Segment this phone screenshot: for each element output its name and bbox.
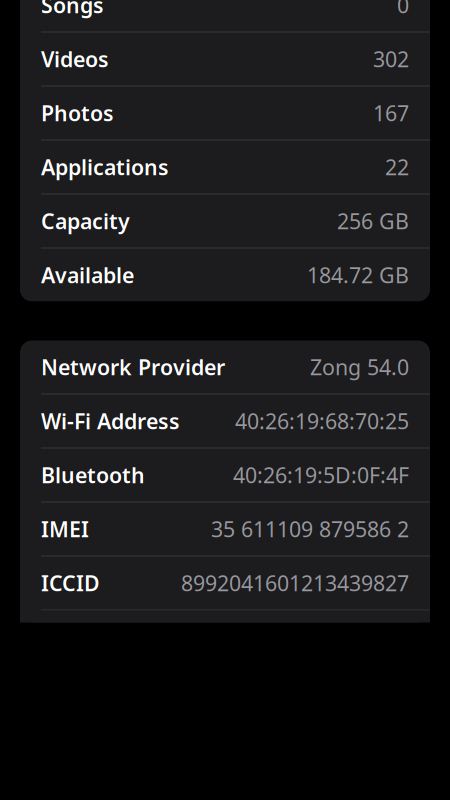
staticText: Bluetooth [41, 461, 145, 489]
staticText: IMEI [41, 515, 89, 543]
staticText: Videos [41, 45, 109, 73]
staticText: 35 611109 879586 2 [211, 515, 409, 543]
staticText: 40:26:19:68:70:25 [235, 407, 409, 435]
staticText: 256 GB [337, 207, 409, 235]
button[interactable]: IMEI [20, 502, 430, 555]
staticText: 167 [373, 99, 409, 127]
staticText: Capacity [41, 207, 130, 235]
staticText: 302 [373, 45, 409, 73]
button[interactable]: Photos [20, 86, 430, 139]
staticText: Zong 54.0 [310, 353, 409, 381]
button[interactable]: Applications [20, 140, 430, 193]
staticText: 8992041601213439827 [181, 569, 409, 597]
button[interactable]: Videos [20, 32, 430, 85]
button[interactable]: Capacity [20, 194, 430, 247]
staticText: Applications [41, 153, 169, 181]
button[interactable]: Network Provider [20, 340, 430, 393]
staticText: 40:26:19:5D:0F:4F [233, 461, 409, 489]
button[interactable]: ICCID [20, 556, 430, 609]
button[interactable]: Songs [20, 0, 430, 31]
staticText: Songs [41, 0, 104, 19]
button[interactable]: Wi-Fi Address [20, 394, 430, 447]
staticText: 184.72 GB [307, 261, 409, 289]
staticText: 22 [385, 153, 409, 181]
staticText: Photos [41, 99, 114, 127]
staticText: ICCID [41, 569, 100, 597]
staticText: Network Provider [41, 353, 225, 381]
staticText: 0 [397, 0, 409, 19]
staticText: Wi-Fi Address [41, 407, 180, 435]
button[interactable]: Available [20, 248, 430, 301]
staticText: Available [41, 261, 134, 289]
button[interactable]: Bluetooth [20, 448, 430, 501]
